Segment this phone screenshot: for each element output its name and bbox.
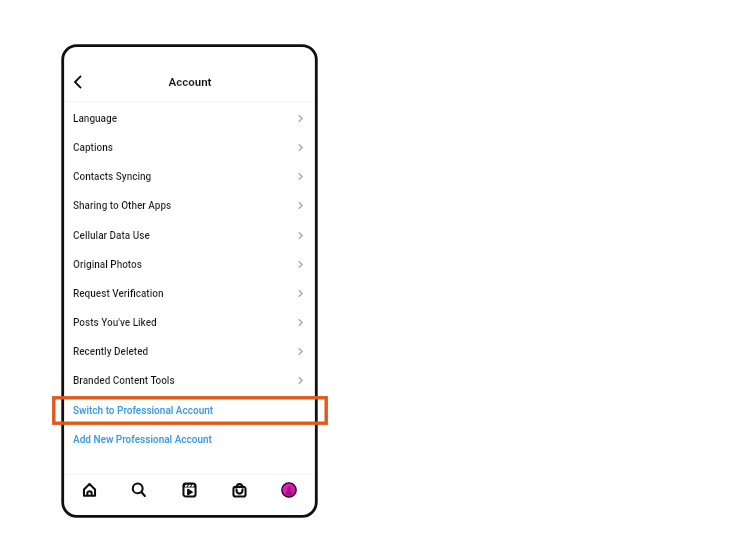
button[interactable]: Cellular Data Use — [62, 221, 317, 250]
staticText: Request Verification — [73, 288, 164, 300]
staticText: Branded Content Tools — [73, 375, 175, 387]
button[interactable]: Profile — [272, 476, 306, 504]
button[interactable]: Home — [72, 476, 106, 504]
button[interactable]: Original Photos — [62, 250, 317, 279]
staticText: Captions — [73, 142, 113, 154]
button[interactable]: Request Verification — [62, 279, 317, 308]
button[interactable]: Search — [121, 476, 155, 504]
staticText: Cellular Data Use — [73, 230, 150, 242]
staticText: Account — [168, 75, 212, 88]
button[interactable]: Shop — [222, 476, 256, 504]
button[interactable]: Contacts Syncing — [62, 162, 317, 191]
button[interactable]: Posts You've Liked — [62, 308, 317, 337]
button[interactable]: Recently Deleted — [62, 337, 317, 366]
staticText: Posts You've Liked — [73, 317, 157, 329]
staticText: Add New Professional Account — [73, 434, 212, 446]
staticText: Original Photos — [73, 259, 142, 271]
button[interactable]: Reels — [172, 476, 206, 504]
staticText: Recently Deleted — [73, 346, 149, 358]
button[interactable]: Branded Content Tools — [62, 366, 317, 395]
button[interactable]: Add New Professional Account — [62, 425, 317, 454]
staticText: Language — [73, 113, 118, 125]
button[interactable]: Captions — [62, 133, 317, 162]
button[interactable]: Language — [62, 104, 317, 133]
button[interactable]: Switch to Professional Account — [62, 396, 317, 425]
staticText: Sharing to Other Apps — [73, 200, 172, 212]
staticText: Switch to Professional Account — [73, 405, 214, 417]
button[interactable]: Back — [65, 70, 91, 94]
staticText: Contacts Syncing — [73, 171, 152, 183]
button[interactable]: Sharing to Other Apps — [62, 191, 317, 220]
